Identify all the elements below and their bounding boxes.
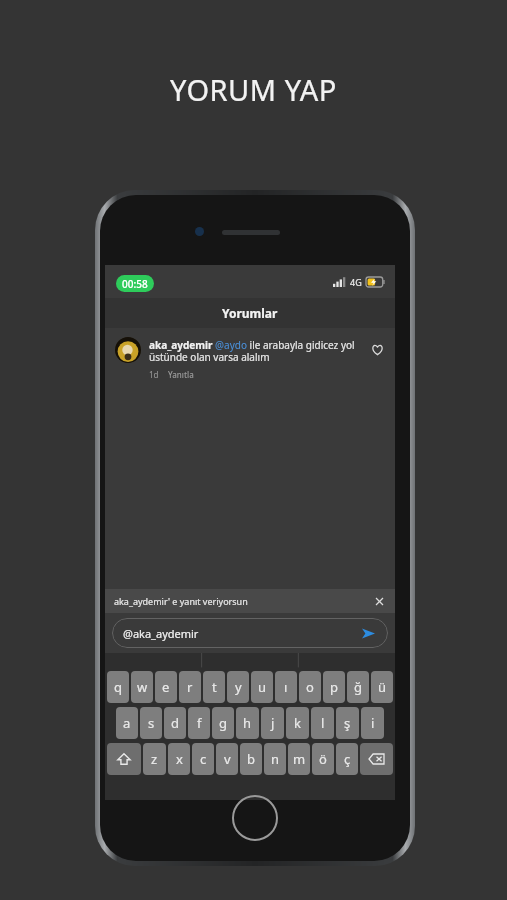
staticText: a [123, 714, 131, 732]
staticText: u [258, 678, 267, 696]
button[interactable]: Home [232, 795, 278, 841]
button[interactable]: ğ [347, 671, 369, 703]
staticText: p [330, 678, 338, 696]
staticText: d [171, 714, 179, 732]
staticText: n [271, 750, 280, 768]
button[interactable]: v [216, 743, 238, 775]
staticText: YORUM YAP [0, 70, 507, 109]
button[interactable]: n [264, 743, 286, 775]
button[interactable]: ç [336, 743, 358, 775]
button[interactable]: w [131, 671, 153, 703]
button[interactable]: k [286, 707, 309, 739]
button[interactable]: Like [369, 341, 385, 357]
staticText: q [114, 678, 122, 696]
button[interactable]: t [203, 671, 225, 703]
staticText: h [243, 714, 252, 732]
button[interactable]: z [143, 743, 166, 775]
button[interactable]: r [179, 671, 201, 703]
staticText: ş [344, 714, 351, 732]
staticText: k [294, 714, 301, 732]
staticText: t [212, 678, 217, 696]
staticText: w [137, 678, 148, 696]
button[interactable]: j [261, 707, 284, 739]
staticText: f [197, 714, 202, 732]
button[interactable]: Key [360, 743, 393, 775]
staticText: aka_aydemir' e yanıt veriyorsun [114, 595, 372, 607]
staticText: ı [284, 678, 288, 696]
button[interactable]: aka_aydemir @aydo ile arabayla gidicez y… [105, 328, 395, 380]
button[interactable]: d [164, 707, 186, 739]
staticText: o [306, 678, 314, 696]
button[interactable]: o [299, 671, 321, 703]
button[interactable]: Key [107, 743, 141, 775]
button[interactable]: x [168, 743, 190, 775]
button[interactable]: a [116, 707, 138, 739]
staticText: v [224, 750, 231, 768]
button[interactable]: e [155, 671, 177, 703]
button[interactable]: s [140, 707, 162, 739]
staticText: x [176, 750, 183, 768]
staticText: e [162, 678, 170, 696]
staticText: Yorumlar [222, 305, 278, 321]
button[interactable]: Yanıtla [168, 369, 194, 380]
staticText: 4G [350, 276, 362, 288]
staticText: j [271, 714, 275, 732]
button[interactable]: ş [336, 707, 359, 739]
button[interactable]: i [361, 707, 384, 739]
staticText: l [321, 714, 325, 732]
staticText: m [293, 750, 306, 768]
staticText: i [371, 714, 375, 732]
staticText: ö [319, 750, 327, 768]
button[interactable]: q [107, 671, 129, 703]
button[interactable]: ü [371, 671, 393, 703]
staticText: b [247, 750, 255, 768]
staticText: 1d [149, 369, 159, 380]
staticText: 00:58 [122, 277, 148, 291]
button[interactable]: @aka_aydemir [112, 618, 388, 648]
staticText: z [151, 750, 158, 768]
staticText: @aka_aydemir [123, 626, 359, 641]
staticText: r [187, 678, 193, 696]
staticText: y [235, 678, 242, 696]
button[interactable]: y [227, 671, 249, 703]
button[interactable]: h [236, 707, 259, 739]
button[interactable]: p [323, 671, 345, 703]
staticText: g [219, 714, 227, 732]
button[interactable]: Send [359, 624, 377, 642]
button[interactable]: l [311, 707, 334, 739]
button[interactable]: c [192, 743, 214, 775]
staticText: s [148, 714, 155, 732]
staticText: c [200, 750, 207, 768]
button[interactable]: u [251, 671, 273, 703]
staticText: ç [344, 750, 351, 768]
button[interactable]: Close reply [372, 594, 386, 608]
staticText: ü [378, 678, 387, 696]
button[interactable]: m [288, 743, 310, 775]
staticText: aka_aydemir @aydo ile arabayla gidicez y… [149, 338, 369, 364]
button[interactable]: ı [275, 671, 297, 703]
button[interactable]: g [212, 707, 234, 739]
button[interactable]: ö [312, 743, 334, 775]
staticText: ğ [354, 678, 362, 696]
button[interactable]: f [188, 707, 210, 739]
button[interactable]: b [240, 743, 262, 775]
